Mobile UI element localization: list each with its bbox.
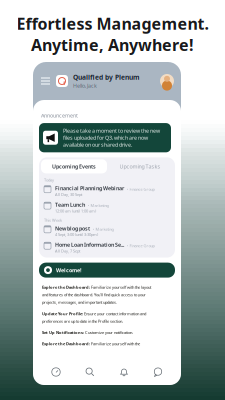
- staticText: New blog post: [55, 225, 90, 232]
- staticText: • Marketing: [87, 203, 108, 208]
- staticText: This Week: [44, 217, 62, 223]
- button[interactable]: Financial Planning Webinar: [39, 183, 175, 199]
- button[interactable]: Search: [73, 363, 107, 381]
- staticText: Effortless Management.: [16, 13, 208, 34]
- staticText: Announcement: [41, 112, 78, 119]
- staticText: • Marketing: [92, 227, 113, 232]
- staticText: Please take a moment to review the new f…: [63, 127, 160, 148]
- button[interactable]: Upcoming Events: [41, 159, 107, 173]
- button[interactable]: Team Lunch: [39, 199, 175, 215]
- staticText: Welcome!: [56, 267, 82, 274]
- staticText: Explore the Dashboard: Familiarize yours…: [42, 285, 151, 305]
- staticText: Today: [44, 177, 54, 183]
- button[interactable]: Home Loan Information Se...: [39, 239, 175, 256]
- button[interactable]: Dashboard: [39, 363, 73, 381]
- staticText: • Finance Group: [126, 186, 154, 192]
- staticText: Set Up Notifications: Customize your not…: [42, 330, 133, 335]
- staticText: • Finance Group: [126, 243, 154, 248]
- staticText: All Day, 7 Sept: [55, 248, 80, 254]
- staticText: Qualified by Plenum: [73, 73, 140, 82]
- staticText: Home Loan Information Se...: [55, 241, 124, 248]
- staticText: Financial Planning Webinar: [55, 185, 124, 192]
- staticText: Anytime, Anywhere!: [31, 34, 194, 55]
- button[interactable]: Notifications: [107, 363, 141, 381]
- staticText: Team Lunch: [55, 201, 85, 208]
- button[interactable]: Messages: [141, 363, 175, 381]
- button[interactable]: Menu: [40, 75, 51, 87]
- staticText: Upcoming Events: [52, 163, 96, 170]
- button[interactable]: Upcoming Tasks: [107, 159, 173, 173]
- button[interactable]: Profile: [160, 74, 174, 88]
- staticText: Upcoming Tasks: [119, 163, 160, 170]
- staticText: 4 Sept, 3:00 (until 3:30pm): [55, 232, 98, 237]
- staticText: All Day, 30 Sept: [55, 192, 82, 197]
- staticText: Explore the Dashboard: Familiarize yours…: [42, 341, 140, 346]
- staticText: Update Your Profile: Ensure your contact…: [42, 311, 146, 324]
- staticText: 12:00 am (until 1:00 am): [55, 208, 96, 213]
- button[interactable]: New blog post: [39, 223, 175, 239]
- staticText: Hello, Jack: [73, 82, 97, 89]
